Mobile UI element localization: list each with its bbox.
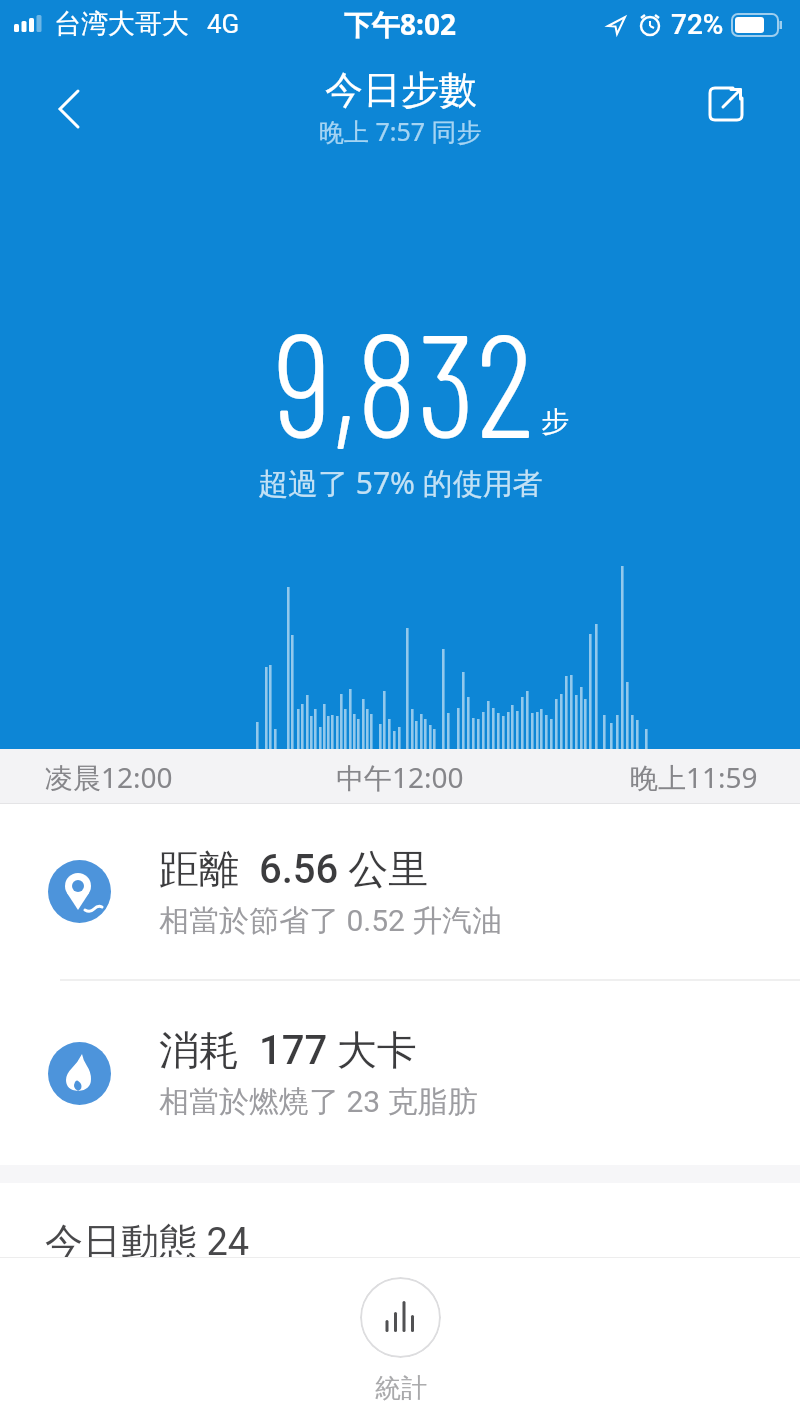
staticText: 今日步數 (325, 66, 477, 114)
staticText: 晚上11:59 (630, 758, 758, 796)
staticText: 超過了 57% 的使用者 (258, 462, 543, 503)
button[interactable]: 統計 (360, 1277, 441, 1405)
staticText: 4G (207, 9, 240, 39)
staticText: 相當於節省了 0.52 升汽油 (159, 902, 503, 940)
staticText: 9,832 (274, 292, 534, 467)
staticText: 凌晨12:00 (45, 758, 173, 796)
button[interactable]: 距離 6.56 公里 (0, 804, 800, 979)
staticText: 下午8:02 (344, 5, 456, 43)
staticText: 距離 6.56 公里 (159, 844, 429, 894)
staticText: 台湾大哥大 (54, 7, 189, 41)
staticText: 今日動態 24 (45, 1218, 250, 1266)
button[interactable]: 消耗 177 大卡 (0, 981, 800, 1165)
staticText: 統計 (375, 1372, 427, 1405)
staticText: 消耗 177 大卡 (159, 1025, 418, 1075)
staticText: 晚上 7:57 同步 (319, 114, 482, 148)
staticText: 72% (671, 8, 724, 41)
staticText: 相當於燃燒了 23 克脂肪 (159, 1083, 478, 1121)
staticText: 中午12:00 (336, 758, 464, 796)
staticText: 步 (541, 404, 569, 439)
button[interactable] (699, 76, 755, 132)
button[interactable] (44, 76, 100, 132)
